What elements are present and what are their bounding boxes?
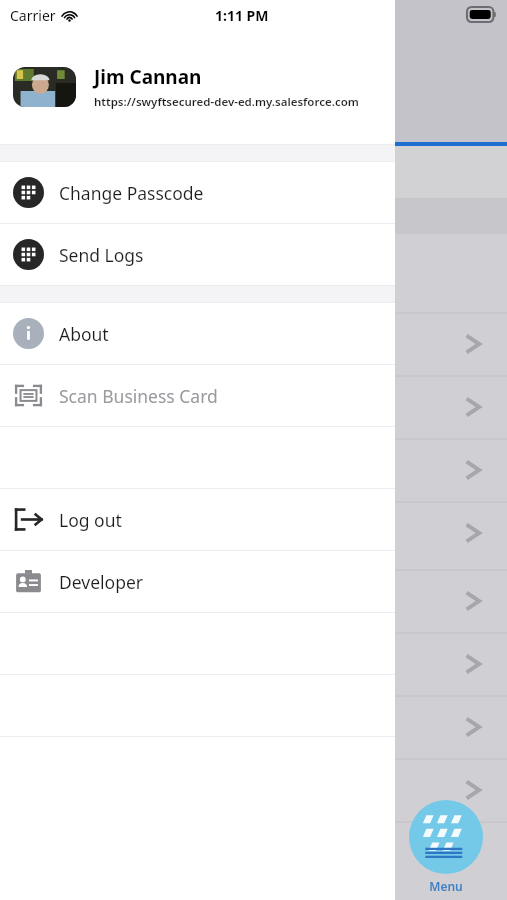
staticText: Send Logs <box>59 243 144 267</box>
staticText: Developer <box>59 570 144 594</box>
staticText: Carrier <box>10 6 56 25</box>
staticText: Change Passcode <box>59 181 204 205</box>
button[interactable]: About <box>0 303 395 364</box>
button[interactable]: Scan Business Card <box>0 365 395 426</box>
button[interactable]: Menu <box>409 800 483 874</box>
button[interactable]: Developer <box>0 551 395 612</box>
staticText: Jim Cannan <box>94 64 202 90</box>
staticText: 1:11 PM <box>215 6 269 25</box>
staticText: Menu <box>414 878 478 894</box>
button[interactable]: Log out <box>0 489 395 550</box>
button[interactable]: Send Logs <box>0 224 395 285</box>
button[interactable]: Jim Cannan <box>0 30 395 144</box>
staticText: Scan Business Card <box>59 384 218 408</box>
staticText: https://swyftsecured-dev-ed.my.salesforc… <box>94 94 359 110</box>
staticText: About <box>59 322 109 346</box>
button[interactable]: Change Passcode <box>0 162 395 223</box>
staticText: Log out <box>59 508 122 532</box>
